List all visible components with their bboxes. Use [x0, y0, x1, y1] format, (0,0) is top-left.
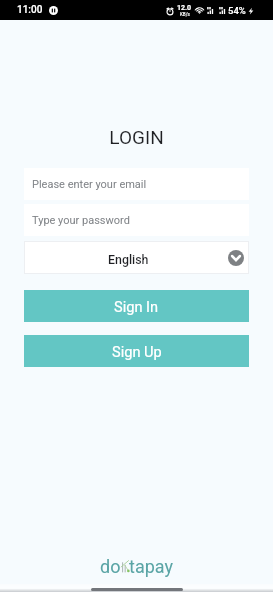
- staticText: Type your password: [32, 214, 130, 227]
- other: Select language: [228, 250, 244, 266]
- button[interactable]: Please enter your email: [24, 168, 249, 200]
- staticText: 11:00: [17, 4, 43, 16]
- staticText: English: [108, 252, 149, 267]
- button[interactable]: Type your password: [24, 204, 249, 236]
- other: Alarm: [166, 7, 174, 15]
- button[interactable]: Sign Up: [24, 335, 249, 367]
- staticText: tapay: [129, 556, 173, 577]
- staticText: do: [100, 556, 121, 577]
- staticText: 54%: [228, 5, 246, 16]
- staticText: Please enter your email: [32, 178, 147, 191]
- staticText: Sign In: [114, 298, 159, 315]
- button[interactable]: English: [24, 241, 249, 274]
- staticText: 12.0: [177, 4, 192, 12]
- staticText: LOGIN: [0, 126, 273, 148]
- staticText: KB/s: [180, 12, 190, 17]
- staticText: Sign Up: [112, 343, 162, 360]
- button[interactable]: Sign In: [24, 290, 249, 322]
